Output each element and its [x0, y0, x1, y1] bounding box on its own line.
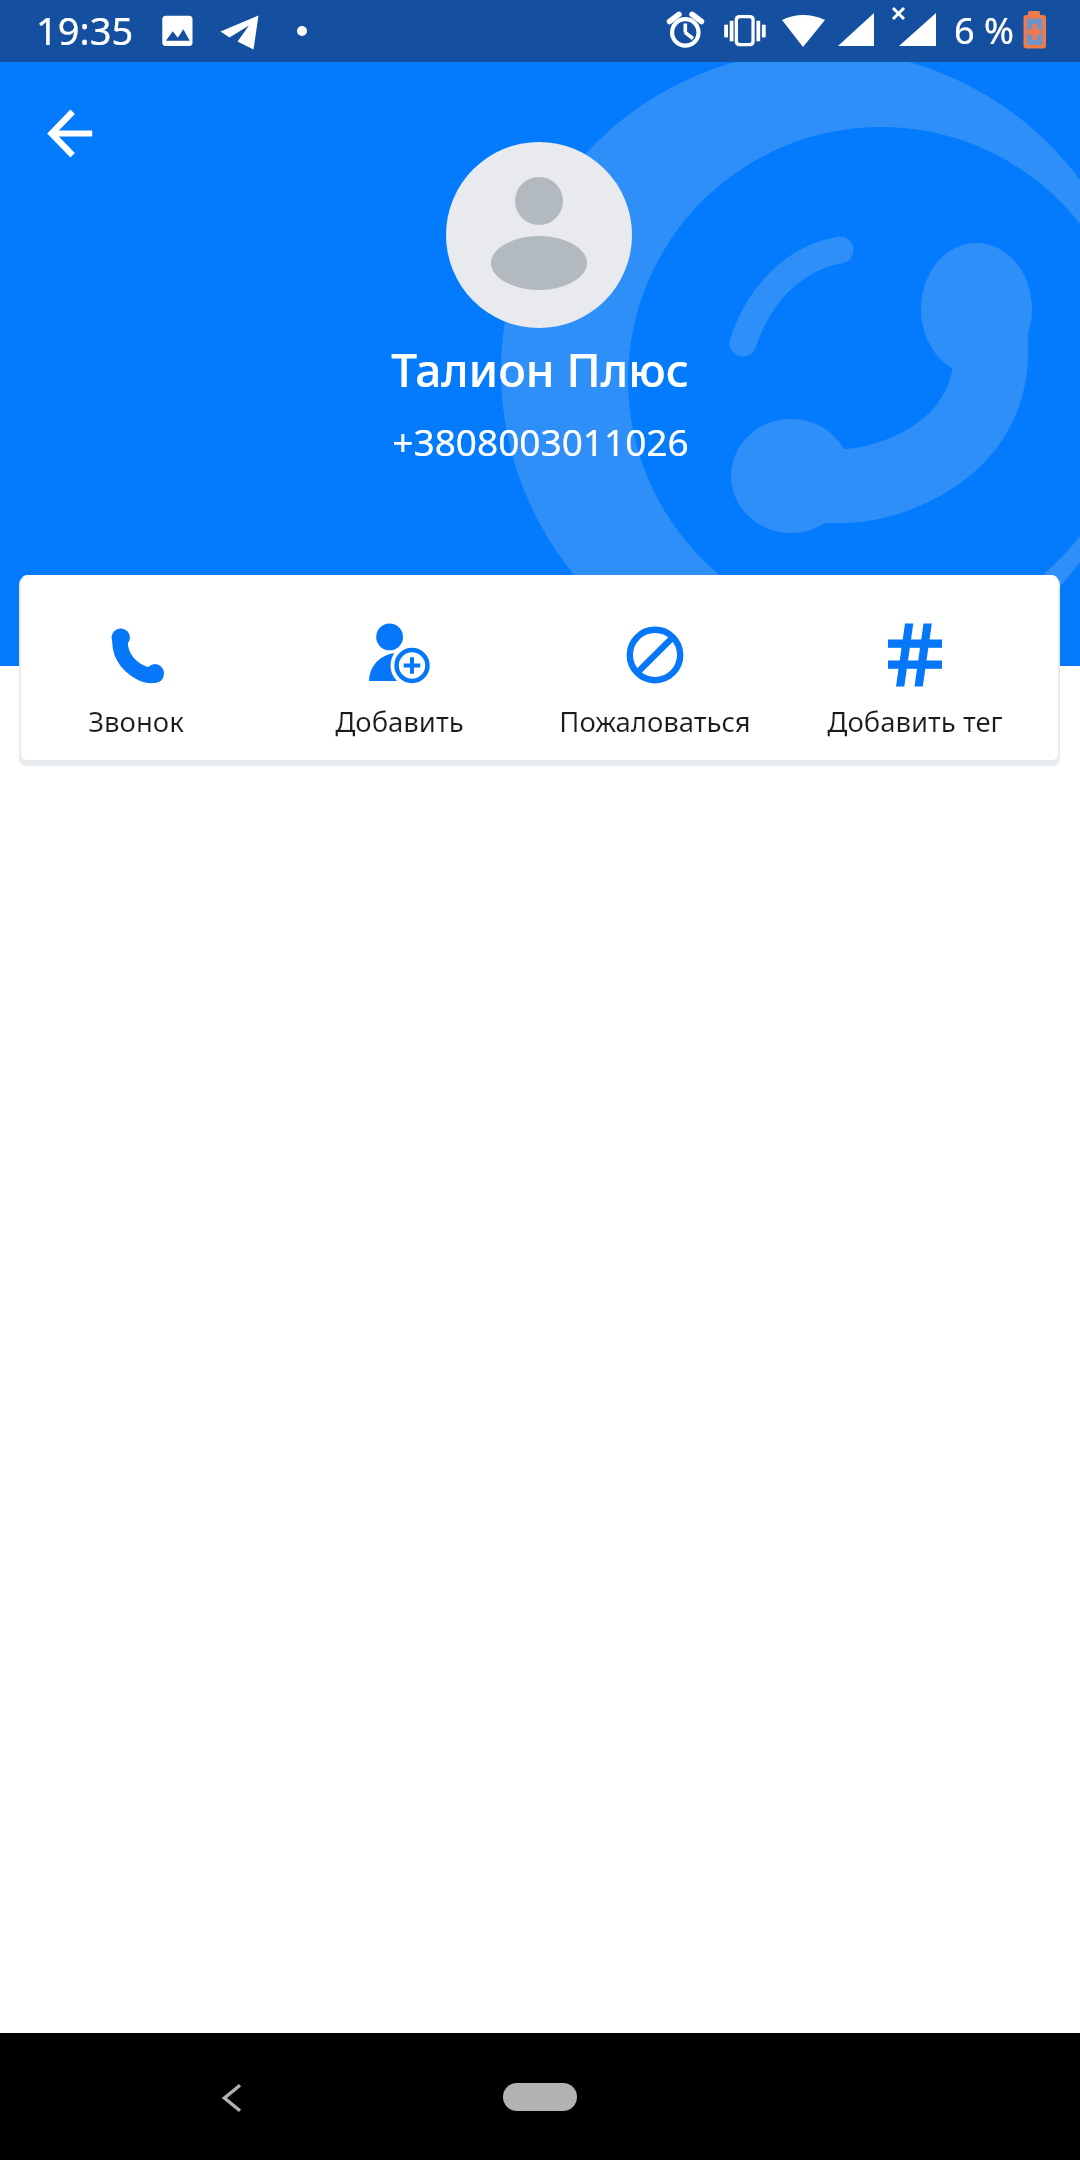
button[interactable]: Back [180, 2046, 284, 2150]
staticText: Звонок [88, 703, 184, 740]
button[interactable]: Home [503, 2083, 577, 2111]
staticText: +3808003011026 [392, 416, 689, 466]
button[interactable]: Добавить [269, 575, 529, 760]
staticText: 19:35 [36, 4, 134, 56]
button[interactable]: Back [23, 85, 119, 181]
staticText: Талион Плюс [391, 338, 689, 401]
button[interactable]: Добавить тег [785, 575, 1045, 760]
staticText: Пожаловаться [559, 703, 751, 740]
staticText: Добавить [335, 703, 464, 740]
button[interactable]: Пожаловаться [525, 575, 785, 760]
button[interactable]: Звонок [21, 575, 266, 760]
staticText: 6 % [954, 6, 1014, 55]
staticText: Добавить тег [827, 703, 1003, 740]
